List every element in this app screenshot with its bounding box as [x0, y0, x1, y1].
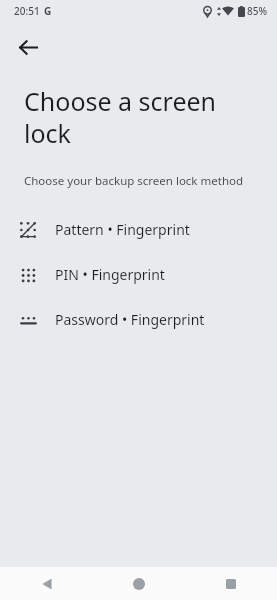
button[interactable]: Back: [0, 567, 93, 600]
staticText: Choose a screen lock: [24, 84, 247, 150]
button[interactable]: Back: [10, 29, 46, 65]
staticText: G: [44, 4, 52, 18]
button[interactable]: Password • Fingerprint: [0, 297, 277, 342]
staticText: 20:51: [14, 4, 40, 18]
button[interactable]: Home: [93, 567, 185, 600]
staticText: PIN • Fingerprint: [55, 265, 165, 284]
button[interactable]: Pattern • Fingerprint: [0, 207, 277, 252]
staticText: Pattern • Fingerprint: [55, 220, 190, 239]
staticText: 85%: [247, 4, 267, 18]
button[interactable]: PIN • Fingerprint: [0, 252, 277, 297]
staticText: Choose your backup screen lock method: [24, 173, 244, 189]
staticText: Password • Fingerprint: [55, 310, 205, 329]
button[interactable]: Recent apps: [185, 567, 277, 600]
